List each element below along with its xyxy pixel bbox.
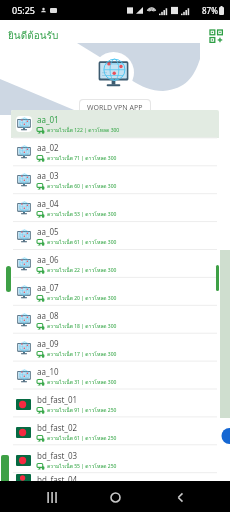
staticText: bd_fast_02 (37, 422, 78, 433)
staticText: ยินดีต้อนรับ (8, 28, 59, 44)
staticText: ความไวเน็ต 20 | ดาวโหลด 300 (47, 294, 117, 302)
button[interactable]: Recent apps (37, 483, 65, 511)
staticText: ความไวเน็ต 18 | ดาวโหลด 300 (47, 322, 117, 330)
staticText: ความไวเน็ต 53 | ดาวโหลด 300 (47, 210, 117, 218)
button[interactable]: Back (166, 483, 194, 511)
staticText: ความไวเน็ต 31 | ดาวโหลด 300 (47, 378, 117, 386)
button[interactable]: aa_02 (11, 138, 219, 166)
staticText: ความไวเน็ต 122 | ดาวโหลด 300 (47, 126, 120, 134)
staticText: ความไวเน็ต 55 | ดาวโหลด 250 (47, 462, 117, 470)
staticText: ความไวเน็ต 17 | ดาวโหลด 300 (47, 350, 117, 358)
staticText: bd_fast_03 (37, 450, 78, 461)
button[interactable]: aa_09 (11, 334, 219, 362)
staticText: bd_fast_01 (37, 394, 78, 405)
button[interactable]: Back (166, 483, 194, 511)
staticText: aa_10 (37, 366, 59, 377)
staticText: 87% (202, 5, 218, 16)
staticText: ความไวเน็ต 61 | ดาวโหลด 300 (47, 238, 117, 246)
staticText: ความไวเน็ต 61 | ดาวโหลด 250 (47, 434, 117, 442)
button[interactable]: aa_07 (11, 278, 219, 306)
staticText: aa_03 (37, 170, 59, 181)
staticText: aa_01 (37, 114, 59, 125)
button[interactable]: bd_fast_04 (11, 474, 219, 482)
staticText: aa_07 (37, 282, 59, 293)
staticText: ความไวเน็ต 60 | ดาวโหลด 300 (47, 182, 117, 190)
button[interactable]: aa_01 (11, 110, 219, 138)
staticText: bd_fast_04 (37, 474, 78, 482)
button[interactable]: bd_fast_03 (11, 446, 219, 474)
staticText: aa_08 (37, 310, 59, 321)
button[interactable]: Home (101, 483, 129, 511)
staticText: ความไวเน็ต 91 | ดาวโหลด 250 (47, 406, 117, 414)
staticText: aa_04 (37, 198, 59, 209)
button[interactable]: Recent apps (37, 483, 65, 511)
staticText: WORLD VPN APP (87, 103, 143, 113)
staticText: aa_02 (37, 142, 59, 153)
button[interactable]: Scan QR code (208, 28, 224, 44)
staticText: ความไวเน็ต 71 | ดาวโหลด 300 (47, 154, 117, 162)
staticText: 05:25 (12, 4, 36, 16)
staticText: ความไวเน็ต 22 | ดาวโหลด 300 (47, 266, 117, 274)
button[interactable]: aa_03 (11, 166, 219, 194)
button[interactable]: aa_04 (11, 194, 219, 222)
button[interactable]: bd_fast_02 (11, 418, 219, 446)
button[interactable]: aa_06 (11, 250, 219, 278)
button[interactable]: aa_05 (11, 222, 219, 250)
button[interactable]: aa_08 (11, 306, 219, 334)
button[interactable]: aa_10 (11, 362, 219, 390)
button[interactable]: Home (101, 483, 129, 511)
staticText: aa_06 (37, 254, 59, 265)
staticText: aa_05 (37, 226, 59, 237)
button[interactable]: bd_fast_01 (11, 390, 219, 418)
staticText: aa_09 (37, 338, 59, 349)
